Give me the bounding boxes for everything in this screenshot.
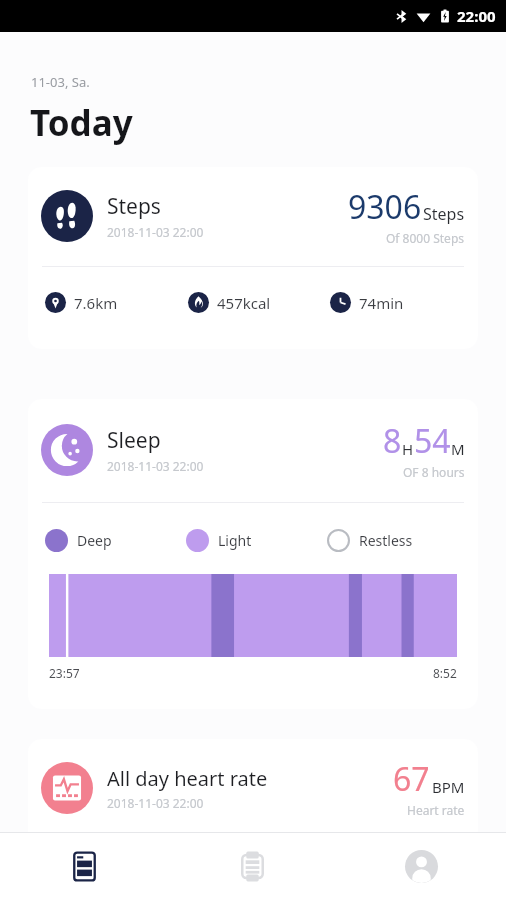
button[interactable]: Steps (28, 167, 478, 349)
staticText: BPM (432, 777, 465, 797)
staticText: Deep (77, 531, 112, 550)
staticText: Steps (107, 192, 161, 221)
staticText: Restless (359, 531, 413, 550)
staticText: 11-03, Sa. (31, 73, 90, 91)
staticText: Light (218, 531, 252, 550)
staticText: 74min (359, 293, 404, 313)
staticText: 8:52 (433, 665, 457, 681)
button[interactable]: Device (168, 832, 337, 900)
staticText: All day heart rate (107, 765, 268, 792)
staticText: 9306 (348, 185, 422, 229)
staticText: Steps (423, 203, 465, 225)
staticText: M (451, 439, 465, 459)
staticText: 8 (383, 419, 402, 463)
staticText: Of 8000 Steps (386, 230, 465, 246)
staticText: Heart rate (407, 802, 465, 818)
staticText: 54 (414, 419, 451, 463)
button[interactable]: Sleep (28, 399, 478, 709)
staticText: 2018-11-03 22:00 (107, 458, 204, 474)
staticText: H (402, 439, 414, 459)
staticText: 22:00 (457, 6, 496, 26)
staticText: Today (30, 99, 133, 147)
staticText: 7.6km (74, 293, 118, 313)
staticText: 2018-11-03 22:00 (107, 224, 204, 240)
staticText: 23:57 (49, 665, 80, 681)
staticText: 457kcal (217, 293, 271, 313)
button[interactable]: Profile (337, 832, 506, 900)
button[interactable]: All day heart rate (28, 739, 478, 844)
button[interactable]: Dashboard (0, 832, 168, 900)
staticText: OF 8 hours (403, 464, 465, 480)
staticText: Sleep (107, 426, 161, 455)
staticText: 67 (393, 757, 430, 801)
staticText: 2018-11-03 22:00 (107, 795, 204, 811)
